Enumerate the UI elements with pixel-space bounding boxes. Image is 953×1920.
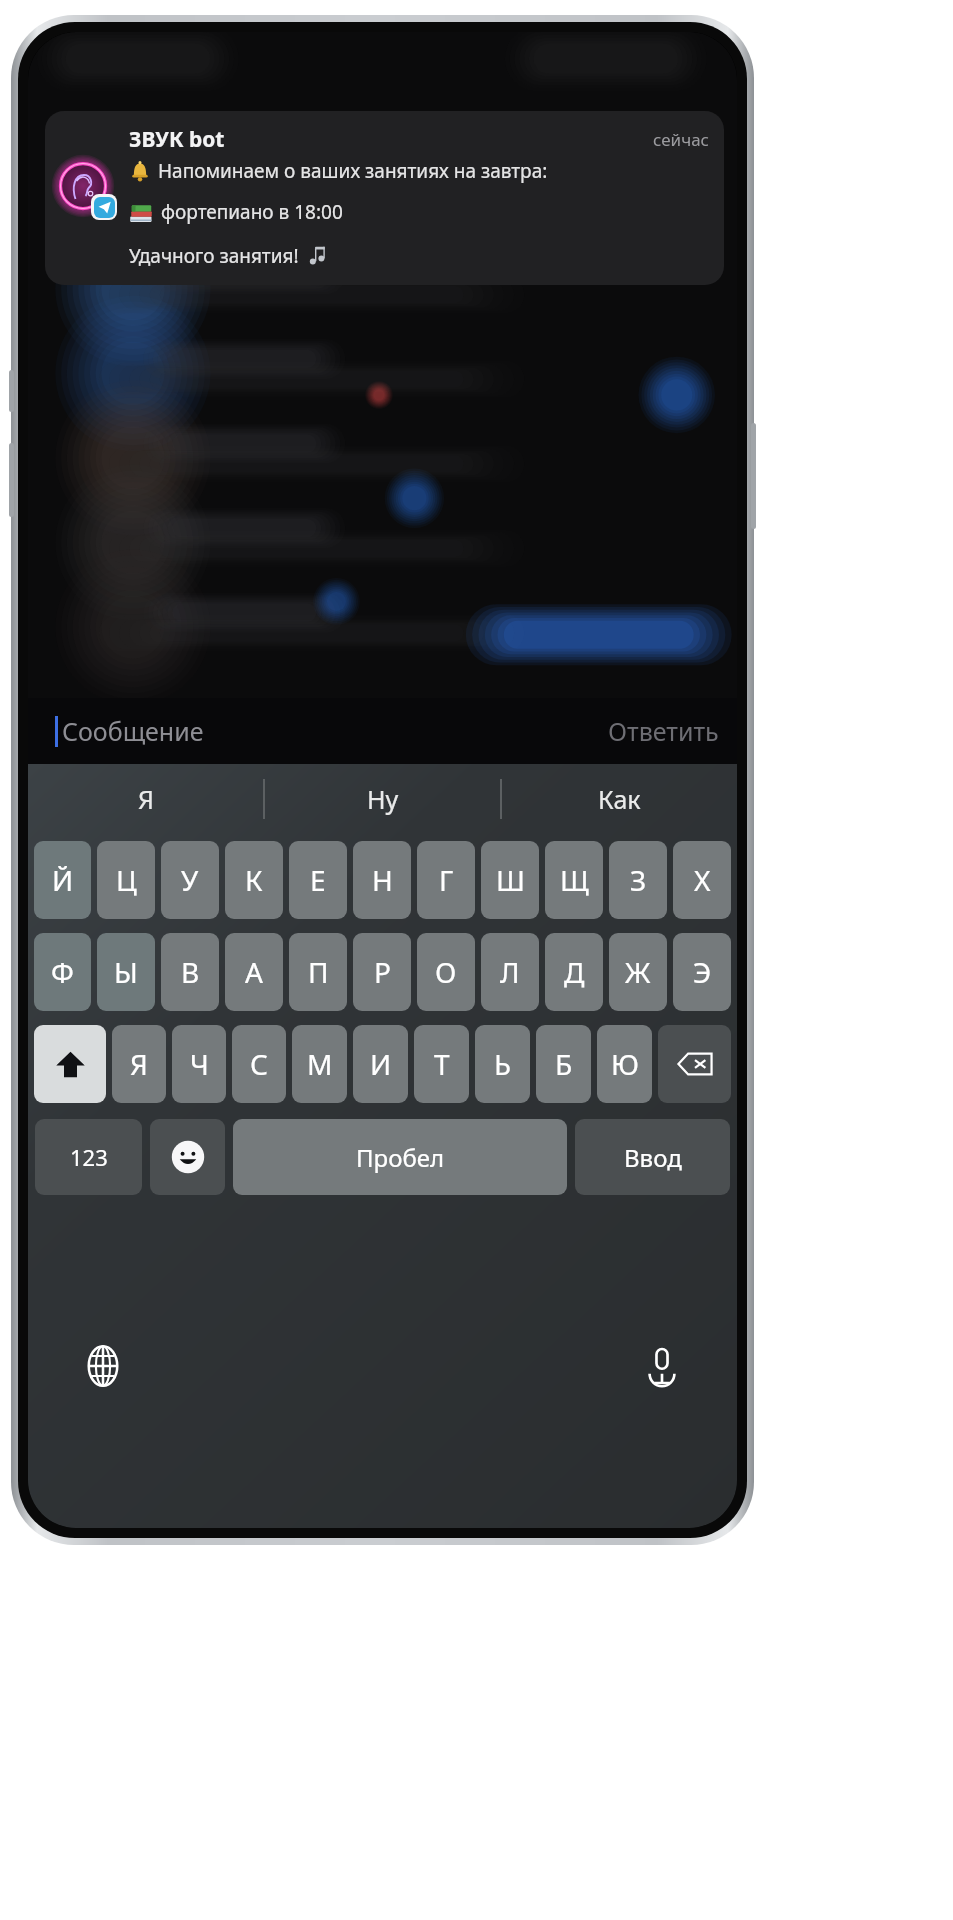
button[interactable]: В — [161, 933, 219, 1011]
button[interactable]: Shift — [34, 1025, 106, 1103]
button[interactable]: Ш — [481, 841, 539, 919]
button[interactable]: ЗВУК bot — [45, 111, 724, 285]
button[interactable]: Ф — [34, 933, 91, 1011]
staticText: Ю — [611, 1045, 639, 1083]
staticText: У — [181, 861, 199, 899]
button[interactable]: Voice input — [382, 1204, 737, 1528]
staticText: Ч — [190, 1045, 209, 1083]
staticText: Ц — [116, 861, 137, 899]
button[interactable]: Щ — [545, 841, 603, 919]
button[interactable]: О — [417, 933, 475, 1011]
staticText: С — [250, 1045, 268, 1083]
button[interactable]: Ну — [265, 764, 500, 834]
button[interactable]: П — [289, 933, 347, 1011]
button[interactable]: Ц — [97, 841, 155, 919]
button[interactable]: Switch language — [28, 1204, 382, 1528]
button[interactable]: Е — [289, 841, 347, 919]
staticText: Напоминаем о ваших занятиях на завтра: — [158, 158, 548, 184]
staticText: К — [245, 861, 263, 899]
button[interactable]: Б — [536, 1025, 591, 1103]
button[interactable]: Й — [34, 841, 91, 919]
button[interactable]: Л — [481, 933, 539, 1011]
staticText: В — [181, 953, 200, 991]
staticText: Я — [138, 782, 154, 816]
staticText: фортепиано в 18:00 — [161, 199, 343, 225]
button[interactable]: Н — [353, 841, 411, 919]
staticText: ЗВУК bot — [129, 125, 225, 154]
staticText: Л — [500, 953, 520, 991]
button[interactable]: М — [292, 1025, 347, 1103]
staticText: сейчас — [653, 128, 709, 151]
staticText: Й — [52, 861, 74, 899]
button[interactable]: А — [225, 933, 283, 1011]
staticText: Ь — [494, 1045, 511, 1083]
button[interactable]: Д — [545, 933, 603, 1011]
staticText: Удачного занятия! — [129, 243, 299, 269]
button[interactable]: Сообщение — [62, 698, 590, 764]
button[interactable]: Ч — [172, 1025, 226, 1103]
staticText: 123 — [70, 1142, 108, 1172]
staticText: Н — [372, 861, 393, 899]
button[interactable]: Я — [28, 764, 263, 834]
staticText: З — [630, 861, 647, 899]
button[interactable]: Ж — [609, 933, 667, 1011]
staticText: О — [435, 953, 457, 991]
button[interactable]: 123 — [35, 1119, 142, 1195]
button[interactable]: Х — [673, 841, 731, 919]
staticText: Х — [694, 861, 711, 899]
button[interactable]: Ы — [97, 933, 155, 1011]
button[interactable]: И — [353, 1025, 408, 1103]
button[interactable]: Ввод — [575, 1119, 730, 1195]
button[interactable]: Г — [417, 841, 475, 919]
staticText: Как — [598, 782, 641, 816]
staticText: Ш — [496, 861, 525, 899]
staticText: Г — [439, 861, 454, 899]
staticText: Д — [564, 953, 585, 991]
staticText: Ввод — [624, 1141, 682, 1174]
button[interactable]: К — [225, 841, 283, 919]
staticText: И — [370, 1045, 392, 1083]
button[interactable]: Т — [414, 1025, 469, 1103]
staticText: Т — [434, 1045, 450, 1083]
staticText: Ну — [367, 782, 399, 816]
staticText: Пробел — [356, 1141, 445, 1174]
staticText: Б — [555, 1045, 573, 1083]
staticText: М — [307, 1045, 333, 1083]
button[interactable]: З — [609, 841, 667, 919]
button[interactable]: Р — [353, 933, 411, 1011]
button[interactable]: Ю — [597, 1025, 652, 1103]
staticText: Ответить — [608, 714, 719, 748]
staticText: Я — [130, 1045, 148, 1083]
button[interactable]: Backspace — [658, 1025, 731, 1103]
button[interactable]: Emoji — [150, 1119, 225, 1195]
staticText: Ы — [114, 953, 138, 991]
button[interactable]: Ь — [475, 1025, 530, 1103]
staticText: А — [245, 953, 263, 991]
button[interactable]: Как — [502, 764, 737, 834]
button[interactable]: С — [232, 1025, 286, 1103]
staticText: Ф — [51, 953, 74, 991]
staticText: Э — [693, 953, 712, 991]
button[interactable]: Ответить — [590, 698, 737, 764]
button[interactable]: Пробел — [233, 1119, 567, 1195]
staticText: Е — [310, 861, 326, 899]
staticText: Р — [374, 953, 391, 991]
staticText: Сообщение — [62, 714, 204, 748]
button[interactable]: Я — [112, 1025, 166, 1103]
staticText: П — [308, 953, 329, 991]
button[interactable]: Э — [673, 933, 731, 1011]
staticText: Щ — [560, 861, 589, 899]
button[interactable]: У — [161, 841, 219, 919]
staticText: Ж — [625, 953, 651, 991]
